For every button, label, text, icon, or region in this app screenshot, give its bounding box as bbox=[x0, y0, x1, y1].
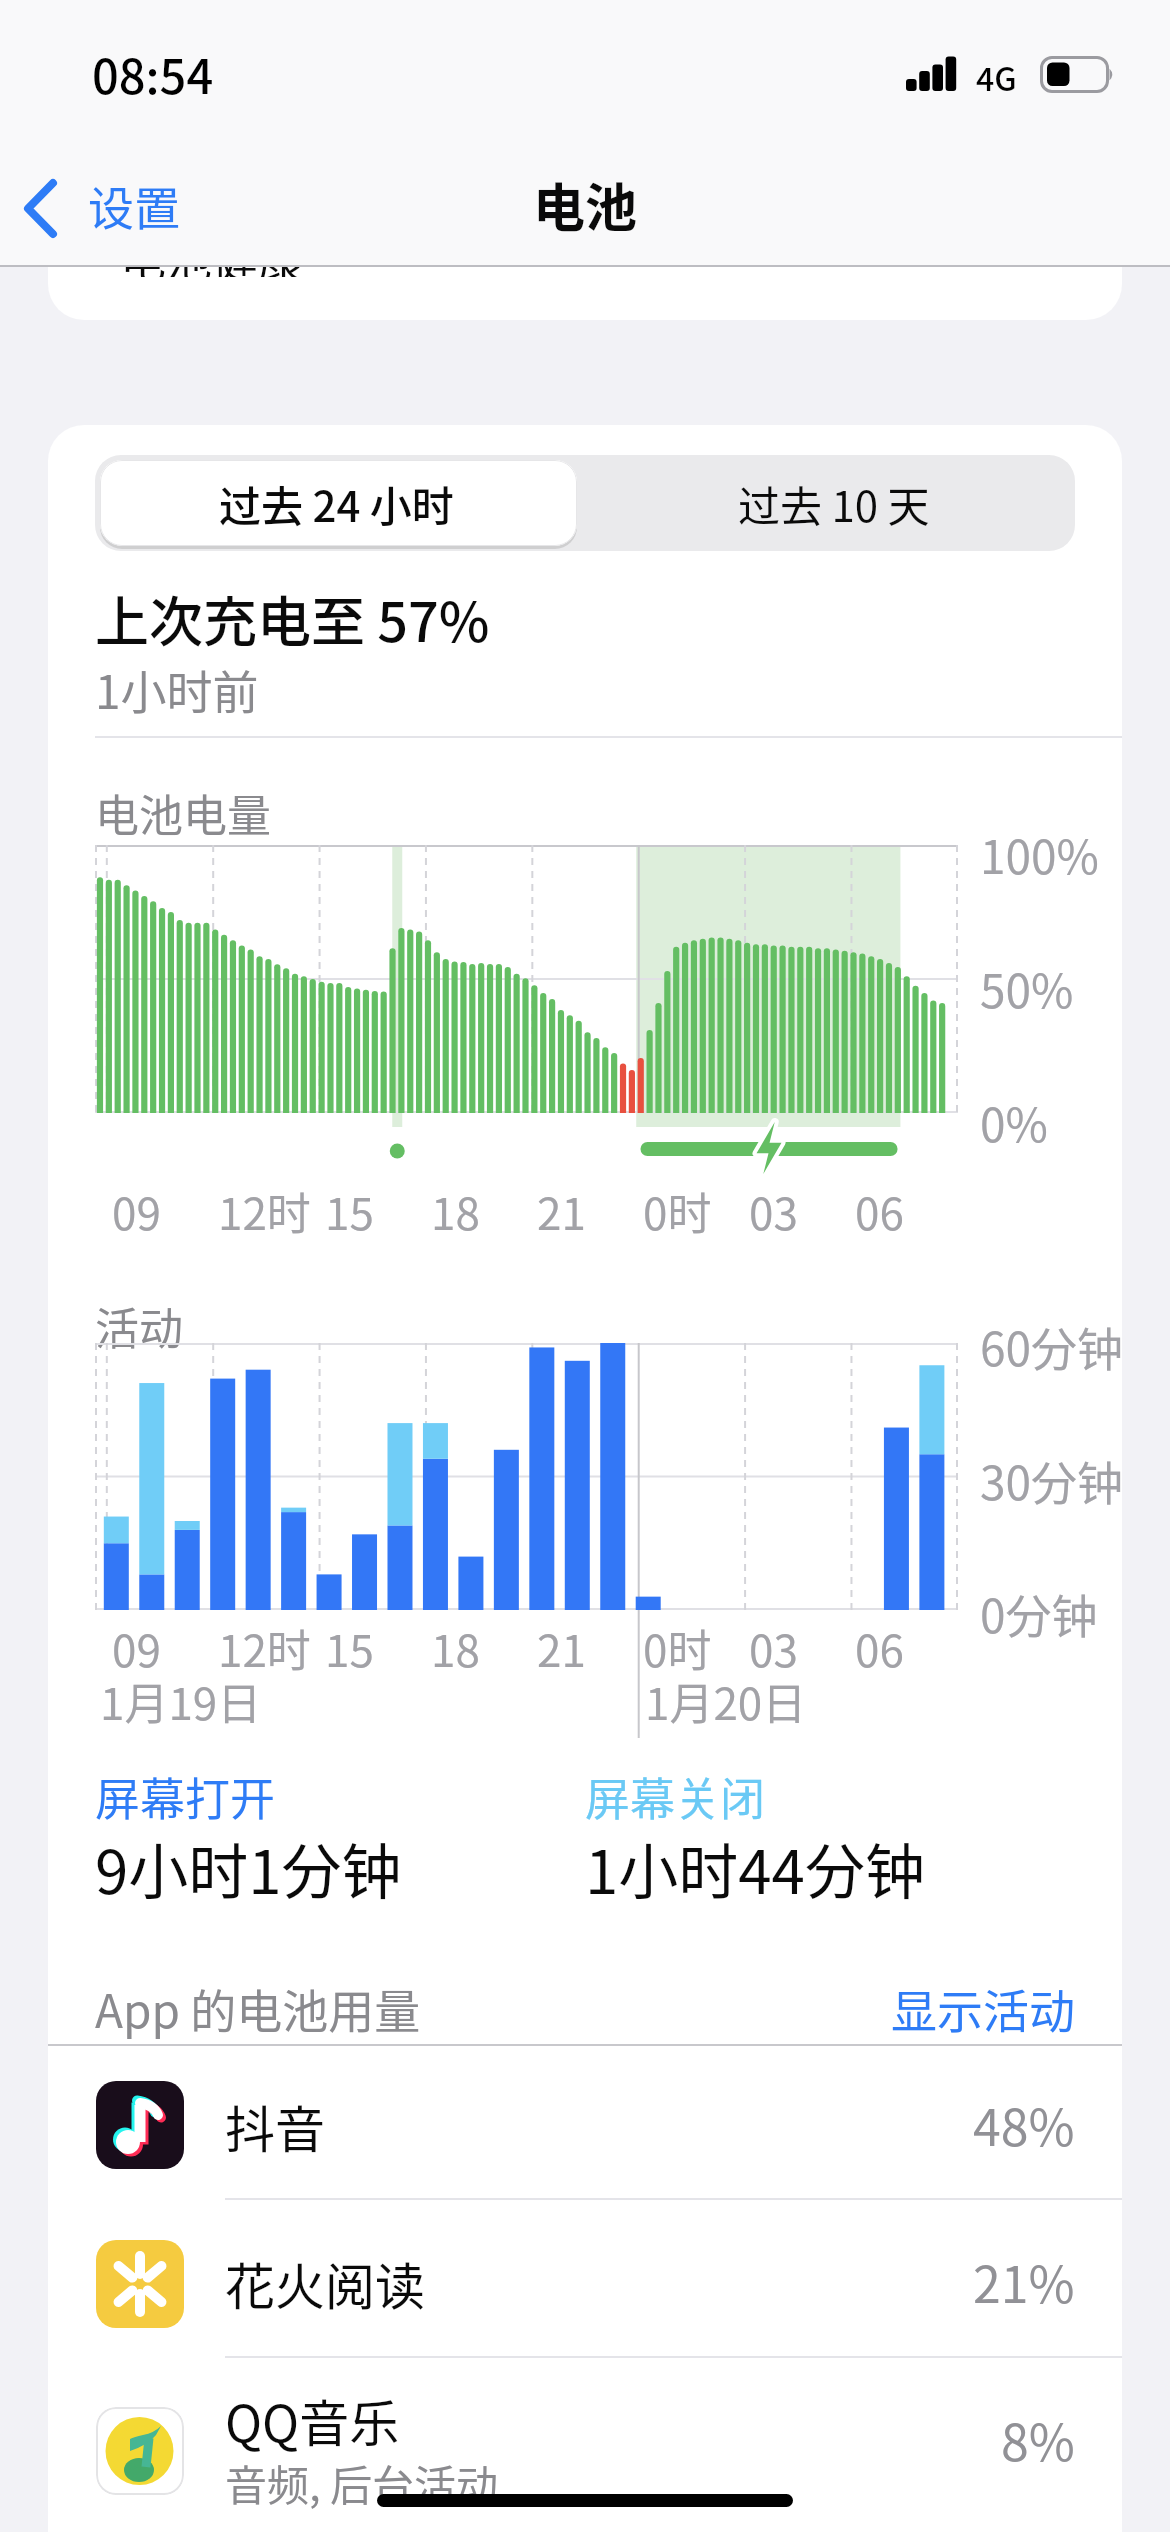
staticText: 06 bbox=[855, 1179, 904, 1243]
staticText: 03 bbox=[749, 1179, 798, 1243]
staticText: 08:54 bbox=[92, 39, 214, 107]
staticText: 1小时前 bbox=[95, 656, 259, 723]
staticText: 抖音 bbox=[225, 2090, 325, 2162]
staticText: 花火阅读 bbox=[225, 2247, 425, 2319]
staticText: 50% bbox=[980, 955, 1074, 1022]
button[interactable] bbox=[48, 2358, 1122, 2532]
staticText: 30分钟 bbox=[980, 1447, 1124, 1514]
staticText: 屏幕关闭 bbox=[585, 1764, 766, 1829]
staticText: 100% bbox=[980, 821, 1099, 888]
staticText: 60分钟 bbox=[980, 1313, 1124, 1380]
staticText: 4G bbox=[976, 54, 1017, 100]
staticText: 09 bbox=[112, 1616, 161, 1680]
button[interactable]: 过去 10 天 bbox=[593, 455, 1075, 551]
staticText: 12时 bbox=[218, 1179, 311, 1243]
staticText: 8% bbox=[1001, 2403, 1075, 2475]
button[interactable]: 过去 24 小时 bbox=[95, 455, 577, 551]
staticText: 1月19日 bbox=[100, 1669, 262, 1733]
staticText: 上次充电至 57% bbox=[95, 579, 490, 657]
staticText: 18 bbox=[431, 1616, 480, 1680]
staticText: 21% bbox=[973, 2245, 1075, 2317]
staticText: 06 bbox=[855, 1616, 904, 1680]
staticText: 电池 bbox=[533, 167, 638, 242]
staticText: 1小时44分钟 bbox=[585, 1824, 925, 1911]
button[interactable]: 显示活动 bbox=[0, 0, 300, 67]
staticText: App 的电池用量 bbox=[95, 1975, 421, 2042]
staticText: 15 bbox=[325, 1616, 374, 1680]
staticText: 48% bbox=[973, 2088, 1075, 2160]
staticText: 音频, 后台活动 bbox=[225, 2452, 499, 2513]
staticText: 21 bbox=[537, 1616, 586, 1680]
staticText: 18 bbox=[431, 1179, 480, 1243]
staticText: 过去 10 天 bbox=[738, 473, 930, 534]
staticText: 21 bbox=[537, 1179, 586, 1243]
staticText: 活动 bbox=[95, 1294, 183, 1358]
staticText: QQ音乐 bbox=[225, 2384, 400, 2456]
staticText: 0时 bbox=[643, 1179, 712, 1243]
staticText: 15 bbox=[325, 1179, 374, 1243]
staticText: 9小时1分钟 bbox=[95, 1824, 402, 1911]
staticText: 电池电量 bbox=[95, 781, 271, 845]
staticText: 显示活动 bbox=[891, 1975, 1075, 2042]
staticText: 电池健康 bbox=[120, 267, 304, 277]
button[interactable]: 设置 bbox=[16, 168, 236, 252]
button[interactable] bbox=[48, 2200, 1122, 2356]
staticText: 09 bbox=[112, 1179, 161, 1243]
button[interactable] bbox=[48, 2046, 1122, 2198]
staticText: 0% bbox=[980, 1089, 1048, 1156]
staticText: 设置 bbox=[88, 172, 180, 239]
staticText: 0分钟 bbox=[980, 1580, 1098, 1647]
staticText: 1月20日 bbox=[645, 1669, 807, 1733]
staticText: 12时 bbox=[218, 1616, 311, 1680]
staticText: 过去 24 小时 bbox=[219, 473, 454, 534]
staticText: 0时 bbox=[643, 1616, 712, 1680]
staticText: 03 bbox=[749, 1616, 798, 1680]
staticText: 屏幕打开 bbox=[95, 1764, 276, 1829]
